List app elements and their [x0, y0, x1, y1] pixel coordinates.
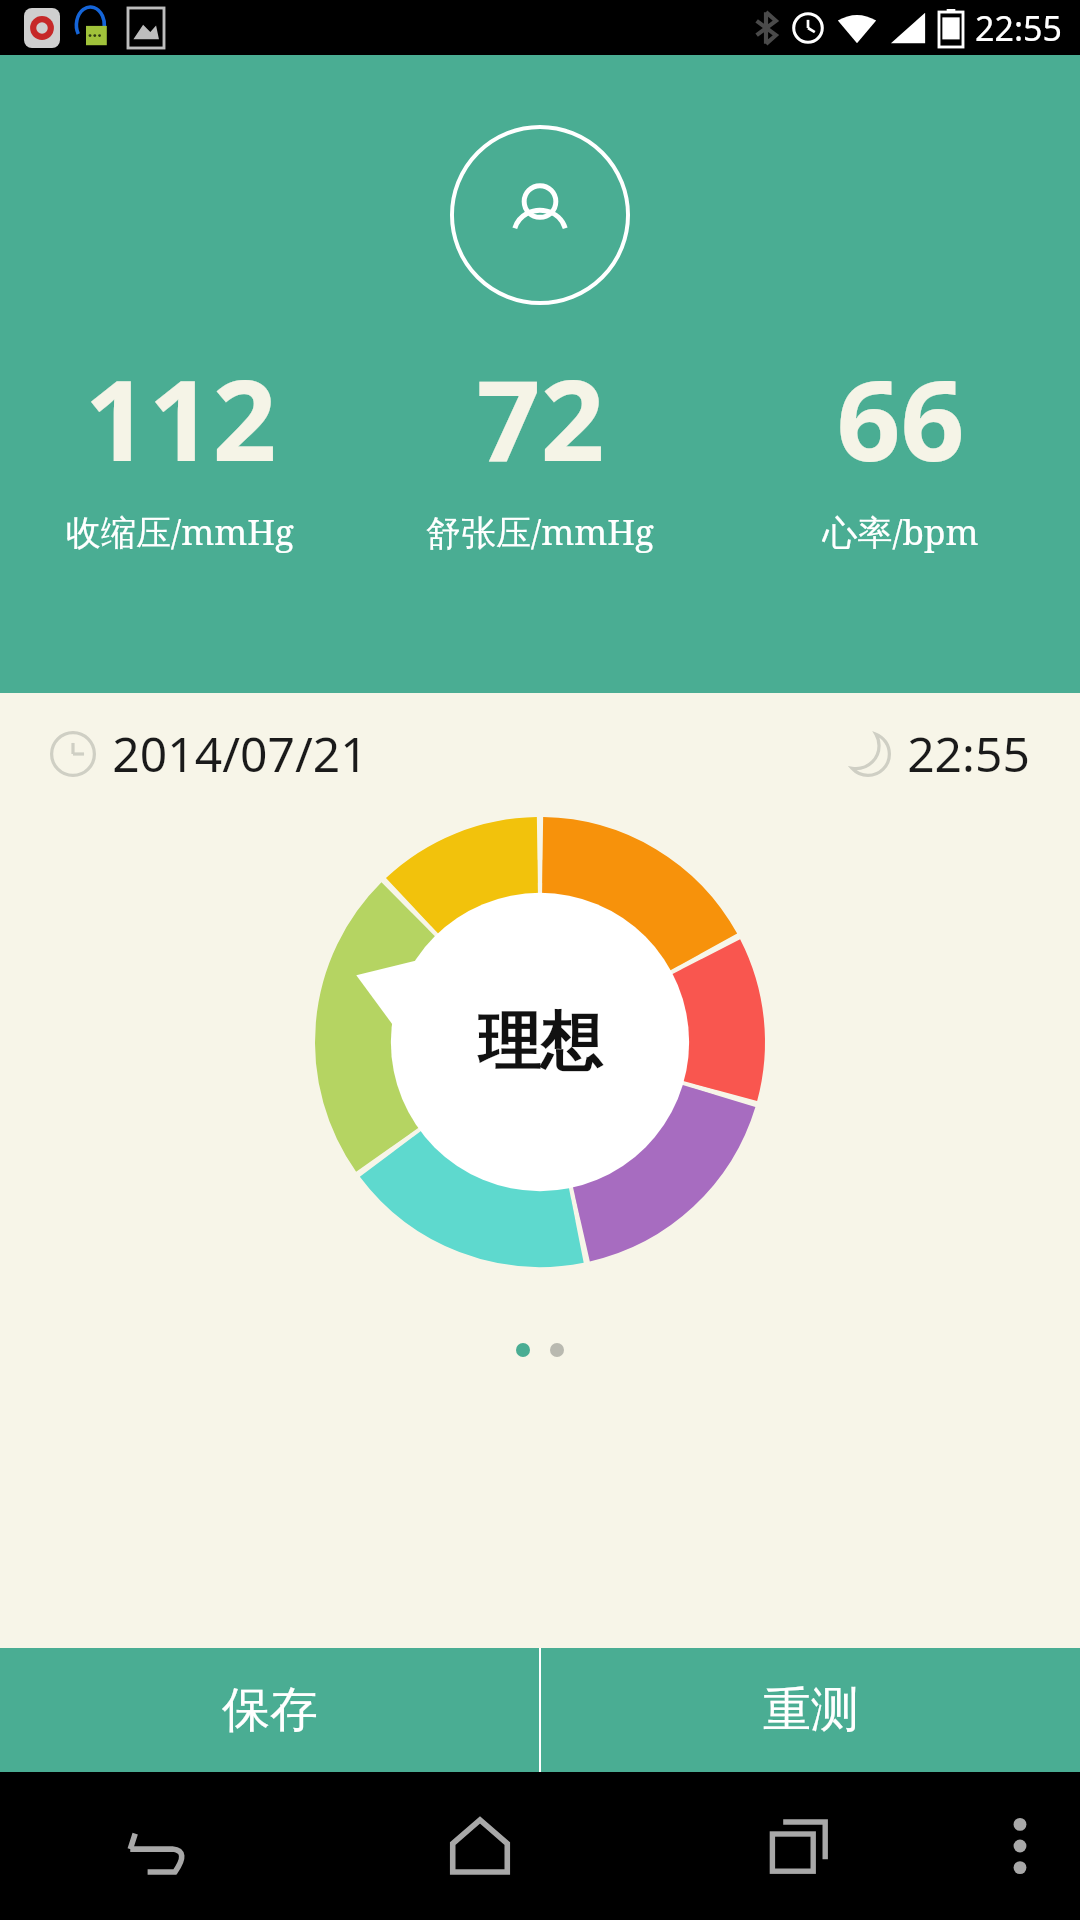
staticText: 理想 — [478, 1003, 602, 1081]
button[interactable]: Back — [0, 1772, 320, 1920]
button[interactable]: 保存 — [0, 1648, 539, 1772]
button[interactable]: 重测 — [541, 1648, 1080, 1772]
staticText: 22:55 — [975, 5, 1062, 51]
staticText: 22:55 — [907, 721, 1030, 786]
staticText: 收缩压/mmHg — [66, 508, 294, 556]
staticText: 66 — [836, 341, 965, 494]
button[interactable]: User profile — [450, 125, 630, 305]
staticText: 心率/bpm — [822, 508, 979, 556]
staticText: 重测 — [763, 1680, 859, 1740]
staticText: 72 — [476, 341, 605, 494]
button[interactable]: Recent apps — [640, 1772, 960, 1920]
staticText: 112 — [84, 341, 277, 494]
staticText: 舒张压/mmHg — [426, 508, 654, 556]
button[interactable]: More options — [960, 1772, 1080, 1920]
staticText: 保存 — [222, 1680, 318, 1740]
button[interactable]: Home — [320, 1772, 640, 1920]
staticText: 2014/07/21 — [112, 721, 368, 786]
